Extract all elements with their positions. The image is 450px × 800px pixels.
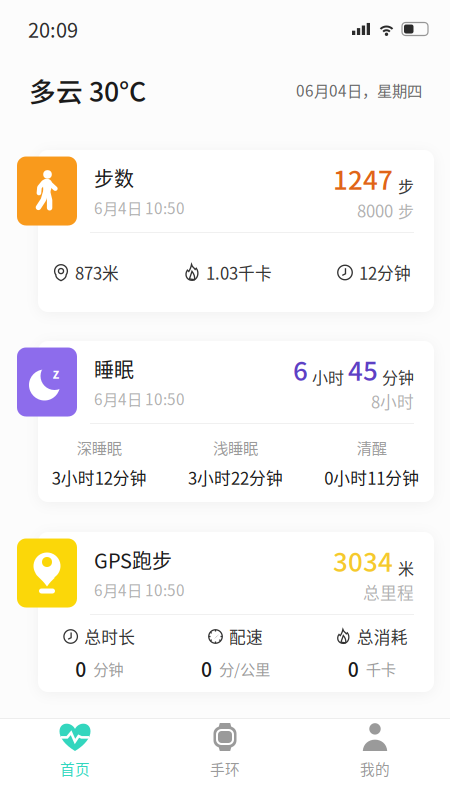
staticText: 8小时 — [371, 389, 414, 413]
staticText: 我的 — [360, 758, 390, 779]
staticText: 0 — [201, 655, 212, 683]
staticText: 深睡眠 — [77, 436, 122, 458]
staticText: 3034 — [333, 542, 393, 579]
staticText: 小时 — [312, 365, 344, 388]
staticText: 3小时12分钟 — [52, 465, 147, 490]
staticText: 总消耗 — [357, 624, 408, 648]
staticText: 0 — [348, 655, 359, 683]
staticText: 8000 — [357, 198, 393, 222]
staticText: 6月4日 10:50 — [94, 578, 185, 601]
staticText: 千卡 — [366, 657, 396, 680]
staticText: 0小时11分钟 — [324, 465, 419, 490]
button[interactable]: 我的 — [300, 719, 450, 800]
staticText: 分钟 — [93, 657, 123, 680]
staticText: 总里程 — [363, 580, 414, 604]
staticText: 总时长 — [84, 624, 135, 648]
staticText: 多云 30°C — [29, 71, 146, 109]
staticText: 0 — [75, 655, 86, 683]
staticText: 1.03千卡 — [206, 260, 272, 284]
staticText: 浅睡眠 — [213, 436, 258, 458]
button[interactable]: 首页 — [0, 719, 150, 800]
staticText: 清醒 — [357, 436, 387, 458]
staticText: 06月04日，星期四 — [296, 79, 422, 101]
staticText: 步 — [398, 199, 414, 222]
staticText: 3小时22分钟 — [188, 465, 283, 490]
staticText: 配速 — [229, 624, 263, 648]
staticText: 分钟 — [382, 365, 414, 388]
staticText: 步 — [398, 174, 414, 197]
staticText: 873米 — [75, 260, 119, 284]
staticText: 睡眠 — [94, 354, 134, 383]
staticText: 步数 — [94, 163, 134, 192]
staticText: 1247 — [333, 160, 393, 197]
staticText: 米 — [398, 556, 414, 579]
staticText: 分/公里 — [219, 657, 270, 680]
staticText: z — [52, 363, 59, 383]
staticText: 6月4日 10:50 — [94, 196, 185, 219]
staticText: 45 — [348, 351, 378, 388]
staticText: 20:09 — [28, 14, 78, 43]
staticText: 手环 — [210, 758, 240, 779]
button[interactable]: 手环 — [150, 719, 300, 800]
staticText: GPS跑步 — [94, 545, 172, 574]
staticText: 6 — [293, 351, 308, 388]
staticText: 12分钟 — [359, 260, 411, 284]
staticText: 首页 — [60, 758, 90, 779]
staticText: 6月4日 10:50 — [94, 387, 185, 410]
